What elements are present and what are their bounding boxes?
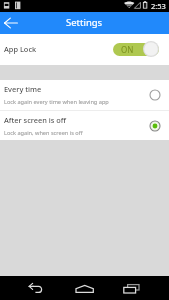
button[interactable]: Option [147,87,163,103]
button[interactable]: Back [0,276,57,300]
staticText: App Lock [4,44,37,54]
button[interactable]: Selected option [147,118,163,134]
staticText: 2:53 [151,1,166,11]
button[interactable]: Home [57,276,113,300]
button[interactable]: Recent apps [113,276,169,300]
staticText: Every time [4,84,42,94]
staticText: Lock again, when screen is off [4,129,83,137]
button[interactable]: ON [113,38,159,60]
button[interactable]: After screen is off [0,111,169,140]
button[interactable]: Every time [0,80,169,110]
staticText: Lock again every time when leaving app [4,98,109,106]
staticText: After screen is off [4,115,67,125]
staticText: Settings [66,16,103,29]
button[interactable]: Back [0,12,21,34]
staticText: ON [121,44,134,55]
button[interactable]: App Lock [0,34,169,65]
